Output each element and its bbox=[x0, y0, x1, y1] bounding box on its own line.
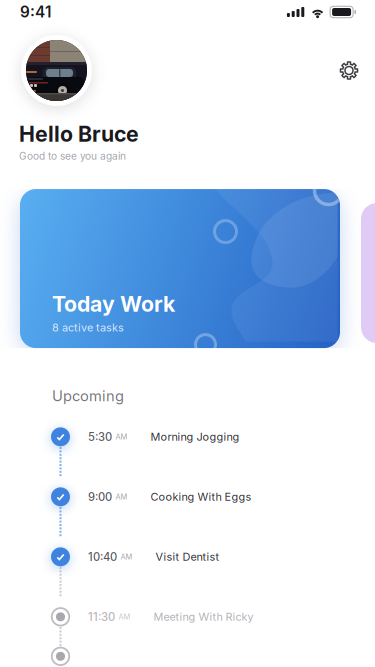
staticText: Meeting With Ricky bbox=[153, 610, 253, 623]
button[interactable]: 9:00 bbox=[0, 467, 375, 527]
staticText: AM bbox=[120, 552, 132, 561]
staticText: AM bbox=[115, 492, 127, 501]
staticText: 9:00 bbox=[88, 490, 112, 504]
button[interactable]: 11:30 bbox=[0, 587, 375, 647]
staticText: Cooking With Eggs bbox=[150, 490, 251, 503]
staticText: 5:30 bbox=[88, 430, 112, 444]
button[interactable]: 5:30 bbox=[0, 407, 375, 467]
button[interactable]: Settings bbox=[335, 56, 363, 84]
staticText: 8 active tasks bbox=[52, 321, 124, 334]
staticText: AM bbox=[118, 612, 130, 621]
staticText: AM bbox=[115, 432, 127, 441]
staticText: 11:30 bbox=[88, 610, 115, 624]
staticText: 10:40 bbox=[88, 550, 117, 564]
staticText: Upcoming bbox=[52, 387, 124, 405]
button[interactable]: Today Work bbox=[20, 189, 340, 348]
staticText: Visit Dentist bbox=[155, 550, 219, 563]
staticText: Good to see you again bbox=[19, 150, 126, 162]
staticText: Today Work bbox=[52, 291, 175, 317]
staticText: Hello Bruce bbox=[19, 121, 139, 147]
staticText: Morning Jogging bbox=[150, 430, 239, 443]
button[interactable]: 10:40 bbox=[0, 527, 375, 587]
staticText: 9:41 bbox=[20, 3, 51, 21]
